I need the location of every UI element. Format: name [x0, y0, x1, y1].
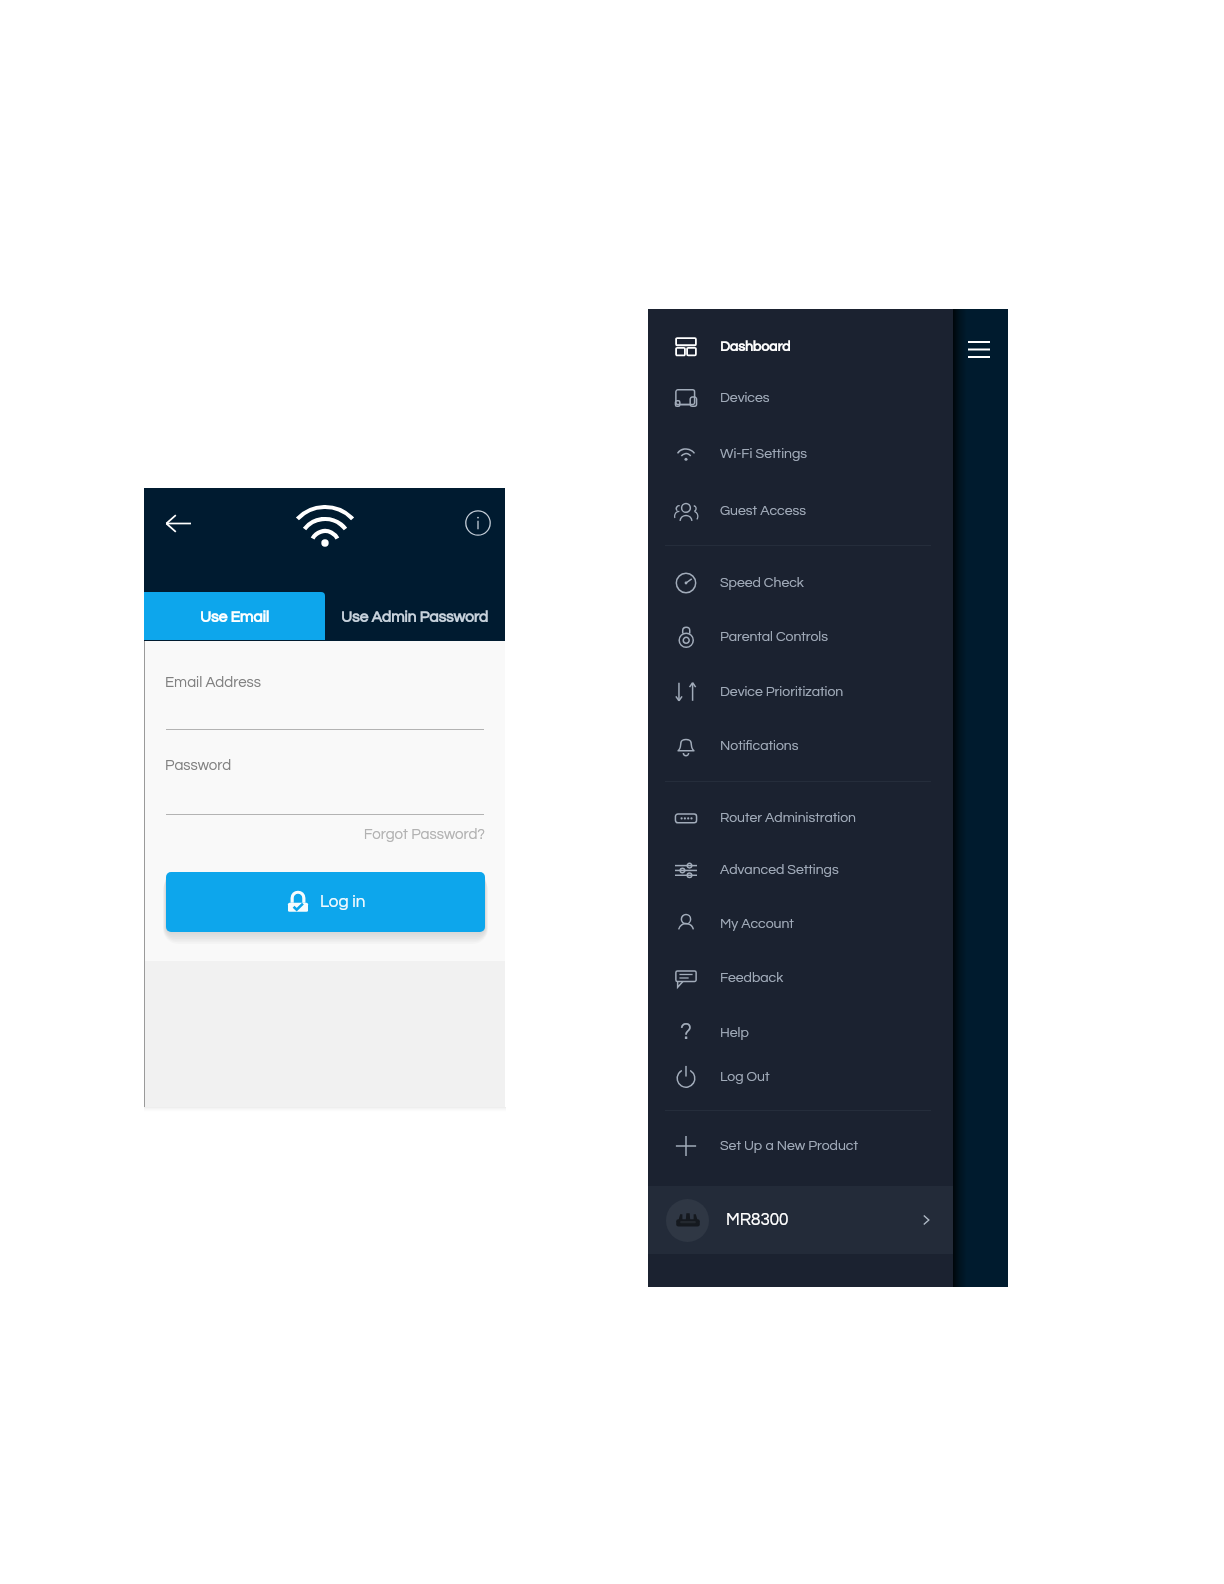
button[interactable]: Notifications [648, 724, 953, 768]
staticText: Forgot Password? [324, 827, 485, 842]
staticText: Parental Controls [720, 630, 828, 644]
button[interactable]: Log in [166, 872, 485, 932]
button[interactable]: Parental Controls [648, 615, 953, 659]
button[interactable]: Info [454, 499, 502, 547]
button[interactable]: Advanced Settings [648, 848, 953, 892]
staticText: Set Up a New Product [720, 1139, 859, 1153]
staticText: Use Email [200, 609, 269, 625]
button[interactable]: Wi-Fi Settings [648, 432, 953, 476]
staticText: Log Out [720, 1070, 770, 1084]
button[interactable]: Dashboard [648, 325, 953, 369]
button[interactable]: MR8300 [648, 1186, 953, 1254]
button[interactable]: Router Administration [648, 796, 953, 840]
staticText: My Account [720, 917, 794, 931]
staticText: Advanced Settings [720, 863, 839, 877]
staticText: Log in [320, 893, 366, 911]
staticText: Guest Access [720, 504, 806, 518]
staticText: Use Admin Password [341, 609, 489, 625]
button[interactable]: Device Prioritization [648, 670, 953, 714]
staticText: Speed Check [720, 576, 804, 590]
button[interactable]: Back [154, 499, 202, 547]
button[interactable]: Set Up a New Product [648, 1124, 953, 1168]
button[interactable]: Speed Check [648, 561, 953, 605]
staticText: Feedback [720, 971, 784, 985]
button[interactable]: Feedback [648, 956, 953, 1000]
button[interactable]: Close navigation menu [955, 325, 1003, 373]
button[interactable]: Log Out [648, 1055, 953, 1099]
staticText: Devices [720, 391, 770, 405]
button[interactable]: My Account [648, 902, 953, 946]
staticText: Help [720, 1026, 749, 1040]
staticText: Device Prioritization [720, 685, 844, 699]
staticText: Router Administration [720, 811, 857, 825]
button[interactable]: Guest Access [648, 489, 953, 533]
staticText: Dashboard [720, 340, 791, 354]
staticText: Password [165, 758, 232, 773]
button[interactable]: Forgot Password? [324, 827, 485, 842]
button[interactable]: Devices [648, 376, 953, 420]
staticText: MR8300 [726, 1211, 789, 1229]
staticText: ? [680, 1020, 692, 1044]
staticText: Wi-Fi Settings [720, 447, 808, 461]
button[interactable]: Use Admin Password [325, 592, 505, 640]
staticText: Email Address [165, 675, 261, 690]
button[interactable]: Use Email [144, 592, 325, 640]
button[interactable]: ? [648, 1011, 953, 1055]
staticText: Notifications [720, 739, 799, 753]
